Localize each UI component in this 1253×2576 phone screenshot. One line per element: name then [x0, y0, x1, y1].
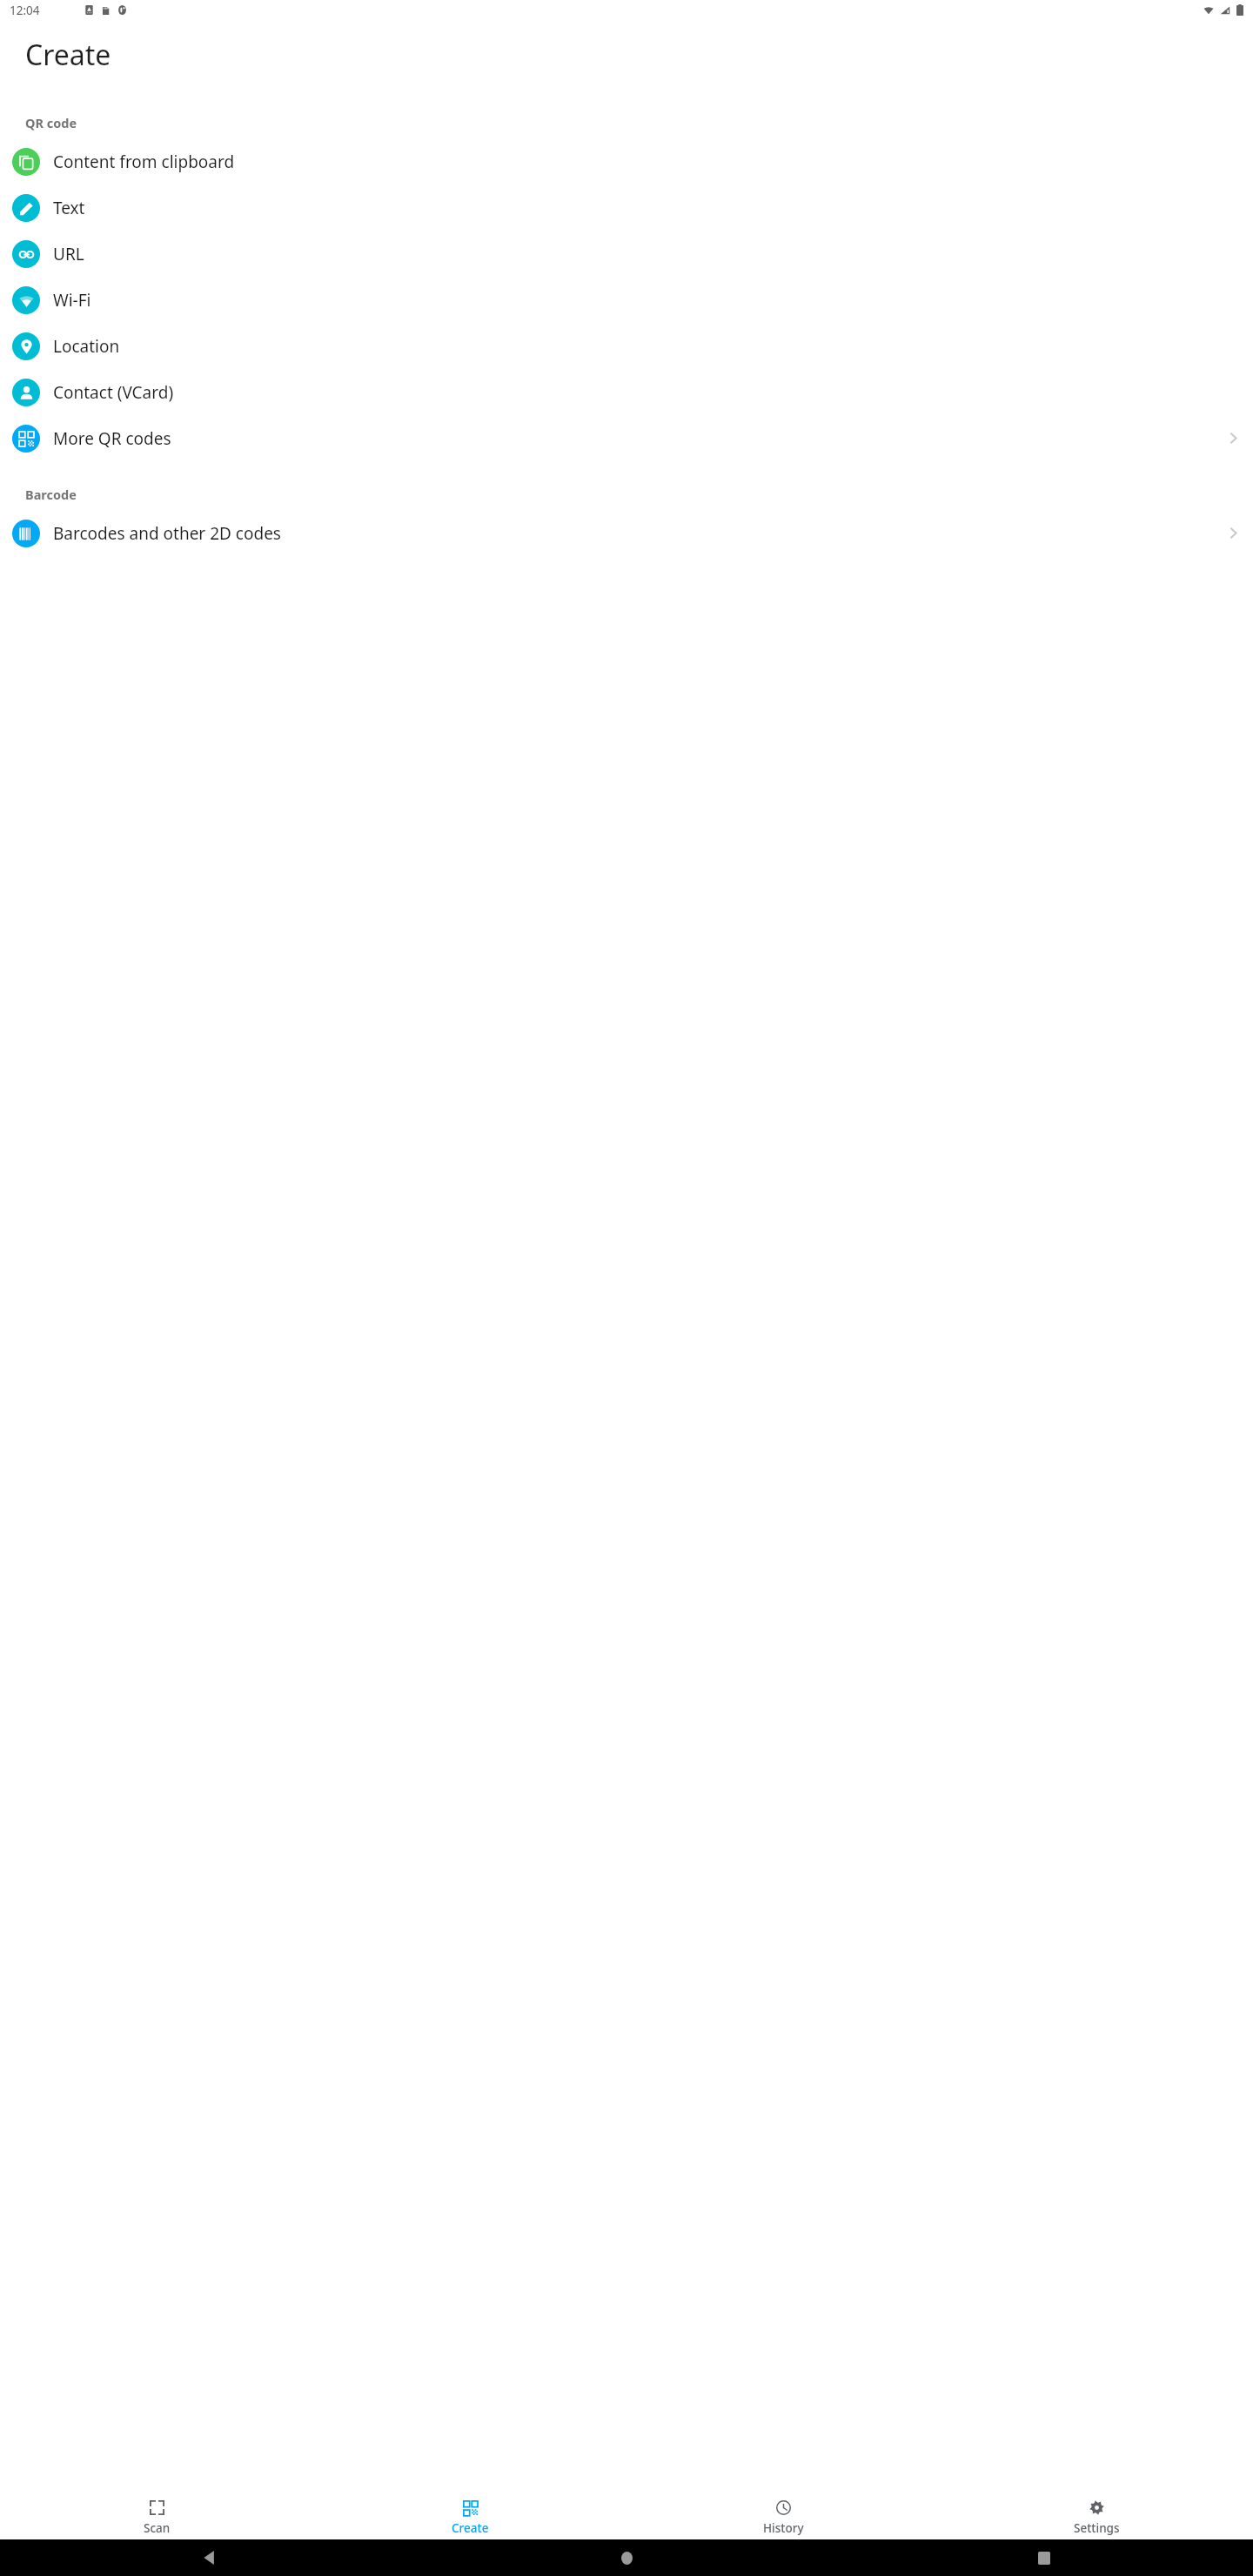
button[interactable]: Create — [313, 2496, 626, 2539]
staticText: Create — [25, 36, 111, 74]
staticText: Location — [53, 335, 120, 358]
other: Home — [621, 2552, 633, 2565]
staticText: Wi-Fi — [53, 289, 91, 312]
staticText: Barcodes and other 2D codes — [53, 522, 281, 545]
staticText: QR code — [25, 114, 77, 131]
staticText: Content from clipboard — [53, 151, 235, 173]
staticText: History — [763, 2520, 804, 2536]
button[interactable]: History — [626, 2496, 940, 2539]
button[interactable]: Contact (VCard) — [0, 369, 1253, 415]
staticText: URL — [53, 243, 84, 265]
staticText: Text — [53, 197, 85, 219]
button[interactable]: Wi-Fi — [0, 277, 1253, 323]
button[interactable]: More QR codes — [0, 415, 1253, 461]
staticText: Scan — [144, 2520, 171, 2536]
button[interactable]: Scan — [0, 2496, 313, 2539]
staticText: Contact (VCard) — [53, 381, 174, 404]
other: Back — [203, 2551, 215, 2565]
button[interactable]: Settings — [940, 2496, 1253, 2539]
staticText: Barcode — [25, 486, 77, 503]
other: Recent apps — [1038, 2552, 1050, 2565]
staticText: Create — [452, 2520, 489, 2536]
button[interactable]: Text — [0, 184, 1253, 231]
staticText: More QR codes — [53, 427, 171, 450]
button[interactable]: Barcodes and other 2D codes — [0, 510, 1253, 556]
staticText: 12:04 — [10, 3, 40, 18]
button[interactable]: Location — [0, 323, 1253, 369]
staticText: Settings — [1074, 2520, 1120, 2536]
button[interactable]: Content from clipboard — [0, 138, 1253, 184]
button[interactable]: URL — [0, 231, 1253, 277]
